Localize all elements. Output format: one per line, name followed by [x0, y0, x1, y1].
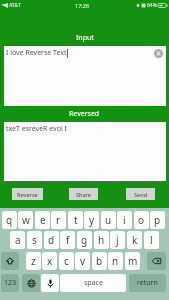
staticText: txeT esreveR evol I: [6, 124, 67, 134]
staticText: t: [74, 213, 78, 227]
staticText: k: [132, 233, 138, 247]
button[interactable]: Next keyboard: [22, 274, 40, 292]
staticText: d: [48, 233, 55, 247]
button[interactable]: h: [94, 231, 109, 249]
staticText: Input: [76, 33, 94, 43]
button[interactable]: I love Reverse Text: [4, 46, 166, 106]
button[interactable]: v: [75, 252, 90, 270]
staticText: m: [128, 254, 138, 268]
staticText: 17:26: [75, 2, 90, 9]
button[interactable]: f: [60, 231, 75, 249]
staticText: i: [123, 213, 126, 227]
button[interactable]: space: [60, 274, 126, 292]
button[interactable]: x: [42, 252, 57, 270]
staticText: AT&T: [9, 2, 21, 9]
button[interactable]: q: [2, 211, 17, 229]
staticText: x: [47, 254, 53, 268]
staticText: Send: [134, 191, 148, 198]
staticText: h: [98, 233, 105, 247]
staticText: u: [105, 213, 112, 227]
button[interactable]: y: [84, 211, 99, 229]
staticText: e: [40, 213, 46, 227]
staticText: r: [56, 213, 61, 227]
button[interactable]: o: [134, 211, 149, 229]
button[interactable]: Clear text: [154, 49, 163, 58]
button[interactable]: Backspace: [147, 252, 166, 270]
staticText: g: [81, 233, 88, 247]
button[interactable]: z: [26, 252, 41, 270]
button[interactable]: 123: [1, 274, 19, 292]
button[interactable]: c: [59, 252, 74, 270]
button[interactable]: d: [44, 231, 59, 249]
staticText: Reversed: [69, 109, 100, 119]
button[interactable]: t: [68, 211, 83, 229]
staticText: z: [31, 254, 36, 268]
staticText: Share: [76, 191, 91, 198]
staticText: w: [22, 213, 30, 227]
staticText: I love Reverse Text: [6, 48, 67, 58]
button[interactable]: Dictate: [41, 274, 59, 292]
staticText: 123: [4, 278, 17, 288]
staticText: s: [32, 233, 37, 247]
button[interactable]: Share: [69, 188, 98, 200]
staticText: Reverse: [17, 191, 38, 198]
button[interactable]: l: [144, 231, 159, 249]
staticText: l: [150, 233, 153, 247]
staticText: v: [80, 254, 86, 268]
button[interactable]: a: [10, 231, 25, 249]
button[interactable]: w: [18, 211, 33, 229]
staticText: j: [116, 233, 119, 247]
staticText: b: [96, 254, 103, 268]
staticText: 64%: [147, 2, 157, 9]
staticText: c: [64, 254, 69, 268]
staticText: n: [112, 254, 119, 268]
staticText: a: [15, 233, 21, 247]
button[interactable]: u: [101, 211, 116, 229]
staticText: p: [154, 213, 161, 227]
button[interactable]: k: [127, 231, 142, 249]
button[interactable]: g: [77, 231, 92, 249]
staticText: q: [6, 213, 13, 227]
button[interactable]: m: [125, 252, 140, 270]
button[interactable]: j: [110, 231, 125, 249]
staticText: y: [89, 213, 95, 227]
button[interactable]: return: [129, 274, 166, 292]
staticText: o: [138, 213, 145, 227]
button[interactable]: i: [117, 211, 132, 229]
staticText: return: [137, 278, 158, 288]
button[interactable]: txeT esreveR evol I: [4, 122, 166, 181]
button[interactable]: b: [92, 252, 107, 270]
button[interactable]: n: [108, 252, 123, 270]
button[interactable]: Shift: [1, 252, 19, 270]
button[interactable]: r: [51, 211, 66, 229]
button[interactable]: e: [35, 211, 50, 229]
button[interactable]: p: [150, 211, 165, 229]
button[interactable]: s: [27, 231, 42, 249]
button[interactable]: Reverse: [12, 188, 43, 200]
staticText: space: [84, 278, 103, 288]
button[interactable]: Send: [126, 188, 155, 200]
staticText: f: [66, 233, 70, 247]
